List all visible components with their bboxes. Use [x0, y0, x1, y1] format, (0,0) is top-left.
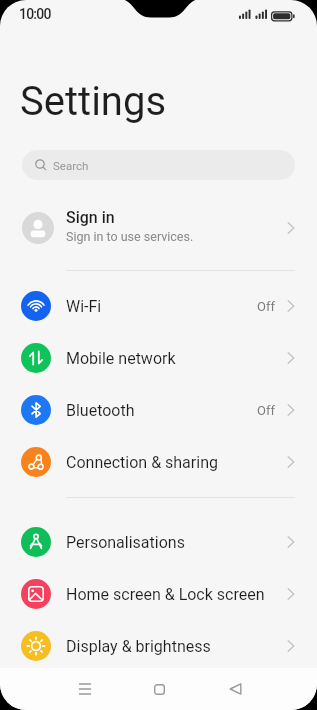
button[interactable]: Connection & sharing: [0, 436, 317, 488]
button[interactable]: Mobile network: [0, 332, 317, 384]
button[interactable]: Wi-Fi: [0, 280, 317, 332]
button[interactable]: [60, 668, 110, 710]
button[interactable]: Sign in: [0, 200, 317, 256]
button[interactable]: [210, 668, 260, 710]
staticText: Search: [53, 159, 89, 172]
staticText: Display & brightness: [66, 637, 211, 656]
staticText: Bluetooth: [66, 401, 135, 420]
staticText: Off: [257, 403, 275, 418]
staticText: Mobile network: [66, 349, 176, 368]
staticText: 10:00: [19, 6, 51, 22]
button[interactable]: Personalisations: [0, 516, 317, 568]
staticText: Connection & sharing: [66, 453, 218, 472]
button[interactable]: Display & brightness: [0, 620, 317, 672]
button[interactable]: Bluetooth: [0, 384, 317, 436]
button[interactable]: [134, 668, 184, 710]
staticText: Wi-Fi: [66, 297, 102, 316]
staticText: Sign in to use services.: [66, 229, 194, 244]
staticText: Home screen & Lock screen: [66, 585, 265, 604]
staticText: Off: [257, 299, 275, 314]
staticText: Settings: [20, 78, 167, 125]
button[interactable]: Home screen & Lock screen: [0, 568, 317, 620]
button[interactable]: Search: [22, 150, 295, 180]
staticText: Personalisations: [66, 533, 185, 552]
staticText: Sign in: [66, 208, 115, 227]
